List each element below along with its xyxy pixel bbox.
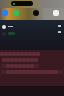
button[interactable] (6, 70, 10, 74)
button[interactable] (4, 52, 8, 56)
button[interactable] (10, 58, 14, 62)
button[interactable] (30, 64, 34, 68)
button[interactable] (32, 52, 36, 56)
button[interactable] (16, 52, 20, 56)
button[interactable] (14, 64, 18, 68)
button[interactable]: TikTok (33, 10, 39, 16)
button[interactable]: Drive (53, 10, 59, 16)
button[interactable]: WhatsApp (13, 10, 19, 16)
button[interactable] (6, 64, 10, 68)
button[interactable] (12, 52, 16, 56)
button[interactable] (2, 58, 6, 62)
button[interactable]: Contacts (2, 10, 8, 16)
button[interactable] (2, 23, 62, 30)
button[interactable] (34, 58, 38, 62)
button[interactable] (18, 64, 22, 68)
button[interactable] (28, 52, 32, 56)
button[interactable] (36, 52, 40, 56)
button[interactable] (10, 64, 14, 68)
button[interactable] (14, 58, 18, 62)
button[interactable] (54, 70, 58, 74)
button[interactable] (30, 58, 34, 62)
button[interactable] (0, 52, 4, 56)
button[interactable] (26, 58, 30, 62)
button[interactable] (20, 52, 24, 56)
button[interactable] (2, 30, 62, 37)
button[interactable] (24, 52, 28, 56)
button[interactable] (18, 58, 22, 62)
button[interactable] (8, 52, 12, 56)
button[interactable] (26, 64, 30, 68)
button[interactable] (6, 58, 10, 62)
button[interactable] (22, 58, 26, 62)
button[interactable] (22, 64, 26, 68)
